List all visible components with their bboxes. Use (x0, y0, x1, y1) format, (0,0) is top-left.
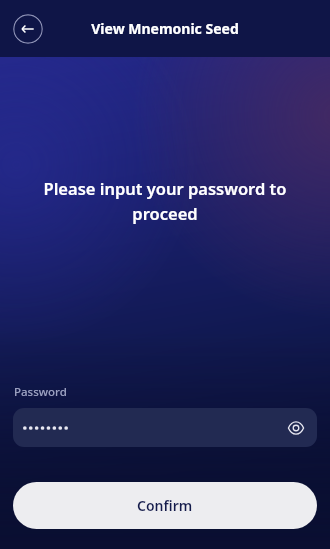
button[interactable]: Show password (13, 408, 317, 447)
staticText: View Mnemonic Seed (91, 19, 239, 38)
button[interactable]: Confirm (13, 482, 317, 529)
button[interactable]: Back (13, 14, 43, 44)
staticText: Please input your password to proceed (30, 177, 300, 224)
staticText: Password (14, 384, 67, 400)
button[interactable]: Show password (285, 417, 307, 439)
staticText: Confirm (137, 496, 193, 515)
